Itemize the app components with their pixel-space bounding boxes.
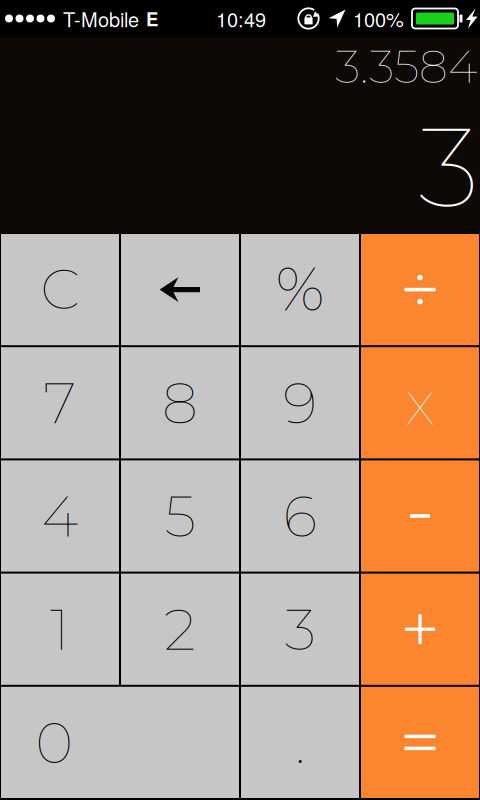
staticText: 8 (162, 368, 198, 438)
staticText: 3.3584 (335, 38, 478, 94)
staticText: 6 (283, 481, 317, 551)
button[interactable] (121, 347, 239, 458)
staticText: C (40, 254, 79, 323)
button[interactable]: Decimal point (241, 687, 359, 798)
staticText: 9 (283, 368, 317, 438)
button[interactable]: Divide (361, 234, 479, 345)
button[interactable] (241, 460, 359, 572)
button[interactable] (1, 574, 119, 685)
staticText: X (406, 381, 434, 436)
staticText: T-Mobile (63, 4, 139, 33)
button[interactable] (241, 347, 359, 458)
button[interactable] (241, 574, 359, 685)
button[interactable]: Percent (241, 234, 359, 345)
staticText: 100% (353, 4, 404, 33)
staticText: 5 (164, 481, 195, 551)
staticText: 0 (35, 707, 72, 777)
button[interactable]: Plus (361, 574, 479, 685)
button[interactable]: Multiply (361, 347, 479, 458)
button[interactable] (121, 460, 239, 572)
button[interactable]: Zero (1, 687, 239, 798)
staticText: 3 (284, 594, 315, 664)
staticText: 3 (418, 98, 479, 235)
staticText: 7 (43, 368, 76, 438)
staticText: % (275, 251, 324, 326)
staticText: 2 (164, 594, 196, 664)
button[interactable] (121, 574, 239, 685)
button[interactable]: Backspace (121, 234, 239, 345)
button[interactable]: Minus (361, 460, 479, 572)
staticText: E (146, 5, 158, 32)
staticText: 4 (41, 481, 78, 551)
staticText: . (295, 707, 305, 777)
button[interactable]: Clear (1, 234, 119, 345)
button[interactable]: Equals (361, 687, 479, 798)
button[interactable] (1, 347, 119, 458)
button[interactable] (1, 460, 119, 572)
staticText: 1 (50, 594, 70, 664)
staticText: 10:49 (216, 4, 266, 33)
